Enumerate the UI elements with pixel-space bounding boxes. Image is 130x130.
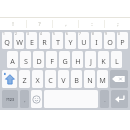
staticText: 3 (27, 32, 29, 36)
staticText: S (24, 56, 28, 66)
button[interactable]: ?123 (2, 90, 18, 108)
staticText: ?123 (6, 97, 14, 102)
staticText: U (81, 37, 87, 47)
staticText: J (90, 56, 92, 66)
staticText: : (91, 20, 93, 28)
staticText: . (104, 96, 106, 103)
button[interactable]: H (72, 51, 83, 68)
button[interactable]: V (58, 70, 69, 88)
button[interactable]: Emoji (31, 90, 42, 108)
staticText: N (87, 75, 93, 85)
button[interactable]: K (98, 51, 109, 68)
staticText: X (35, 75, 40, 85)
staticText: 1 (3, 32, 5, 36)
staticText: , (24, 96, 26, 103)
button[interactable]: Enter (111, 90, 128, 108)
staticText: H (75, 56, 81, 66)
staticText: V (61, 75, 66, 85)
staticText: C (48, 75, 53, 85)
button[interactable]: ; (105, 18, 130, 30)
staticText: 2 (15, 32, 17, 36)
staticText: B (74, 75, 79, 85)
button[interactable]: Backspace (110, 70, 128, 88)
staticText: K (101, 56, 106, 66)
staticText: 9 (105, 32, 107, 36)
staticText: D (36, 56, 42, 66)
button[interactable]: F (46, 51, 57, 68)
button[interactable]: L (111, 51, 122, 68)
button[interactable]: 3 (26, 32, 37, 49)
button[interactable]: 0 (117, 32, 128, 49)
staticText: O (107, 37, 113, 47)
button[interactable]: 2 (14, 32, 24, 49)
button[interactable]: M (97, 70, 108, 88)
button[interactable]: 7 (78, 32, 89, 49)
staticText: I (95, 37, 98, 47)
button[interactable]: A (7, 51, 18, 68)
staticText: 4 (40, 32, 42, 36)
staticText: 5 (53, 32, 55, 36)
button[interactable]: ? (27, 18, 52, 30)
staticText: Q (4, 37, 10, 47)
button[interactable]: B (71, 70, 82, 88)
staticText: P (120, 37, 125, 47)
button[interactable]: 9 (104, 32, 115, 49)
staticText: 7 (79, 32, 81, 36)
staticText: F (50, 56, 54, 66)
button[interactable]: 4 (39, 32, 50, 49)
staticText: Y (68, 37, 73, 47)
staticText: 6 (66, 32, 68, 36)
button[interactable]: C (45, 70, 56, 88)
staticText: Z (22, 75, 27, 85)
button[interactable]: 6 (65, 32, 76, 49)
staticText: M (99, 75, 106, 85)
staticText: 8 (92, 32, 94, 36)
staticText: , (65, 20, 67, 28)
staticText: G (62, 56, 68, 66)
staticText: E (30, 37, 34, 47)
button[interactable]: 1 (2, 32, 12, 49)
button[interactable]: S (20, 51, 31, 68)
button[interactable]: 5 (52, 32, 63, 49)
staticText: L (115, 56, 119, 66)
button[interactable]: , (20, 90, 29, 108)
button[interactable]: X (32, 70, 43, 88)
button[interactable]: Z (19, 70, 30, 88)
button[interactable]: 8 (91, 32, 102, 49)
button[interactable]: ! (0, 18, 26, 30)
button[interactable]: G (59, 51, 70, 68)
staticText: T (56, 37, 60, 47)
staticText: A (10, 56, 15, 66)
staticText: 0 (118, 32, 120, 36)
button[interactable]: D (33, 51, 44, 68)
button[interactable]: J (85, 51, 96, 68)
staticText: ! (12, 20, 14, 28)
staticText: ? (38, 20, 41, 28)
button[interactable]: N (84, 70, 95, 88)
button[interactable]: Shift (2, 70, 17, 88)
staticText: R (42, 37, 47, 47)
staticText: W (16, 37, 23, 47)
staticText: ; (117, 20, 119, 28)
